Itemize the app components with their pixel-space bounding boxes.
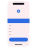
button[interactable] (7, 19, 29, 23)
button[interactable] (9, 38, 28, 41)
